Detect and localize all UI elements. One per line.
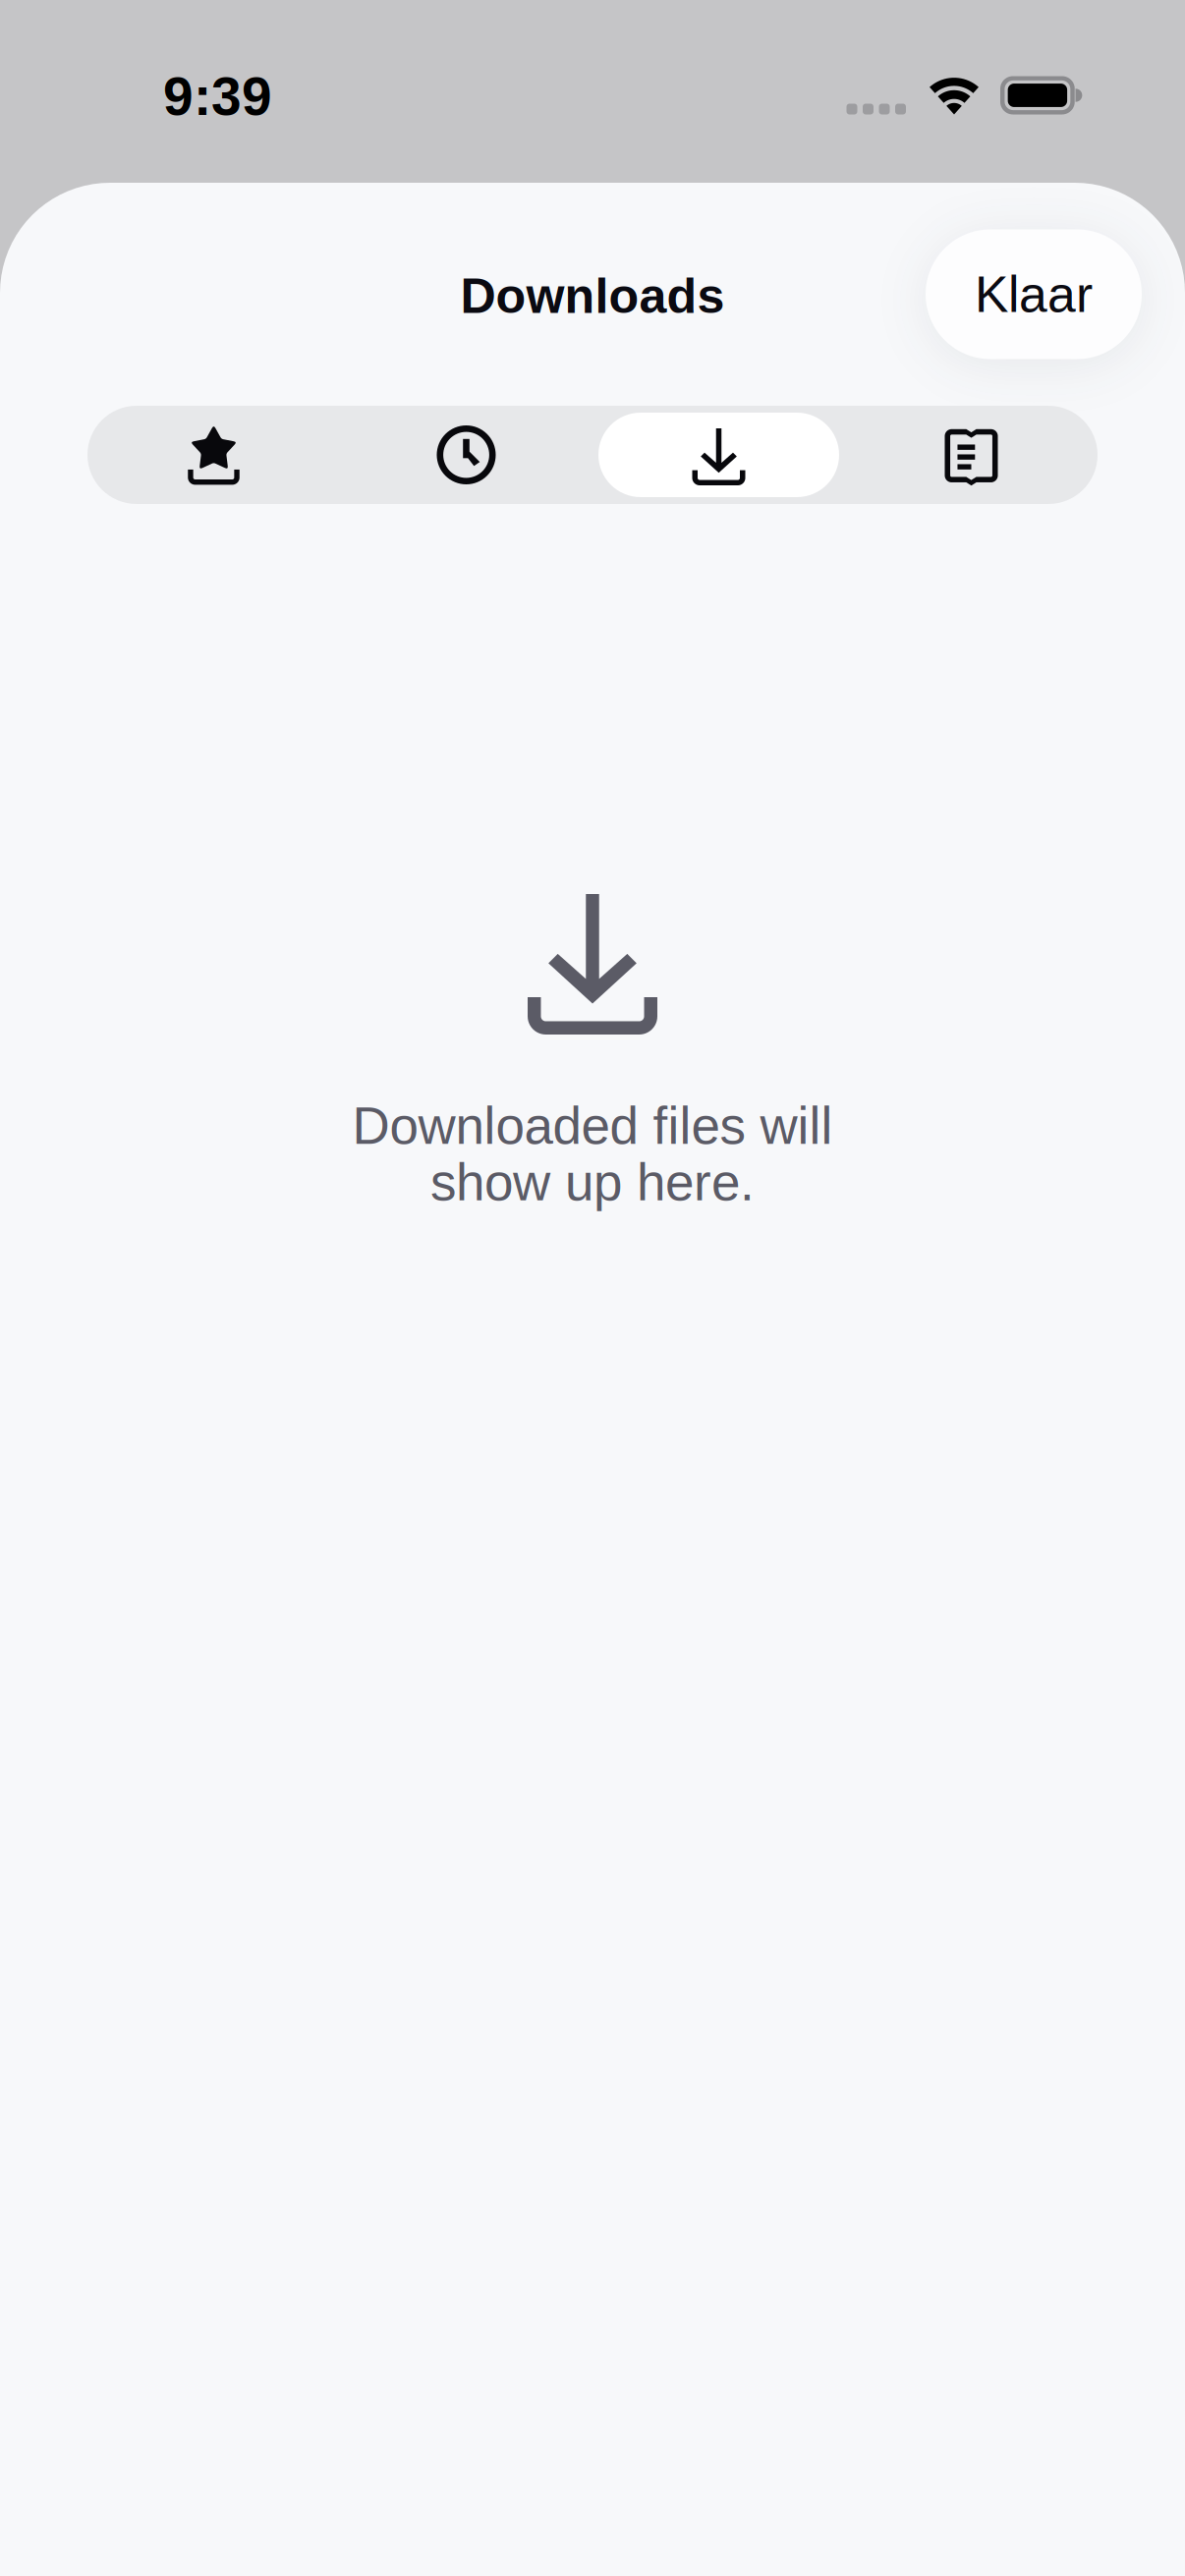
staticText: Downloaded files will — [352, 1097, 833, 1154]
button[interactable]: Klaar — [926, 229, 1142, 359]
staticText: Klaar — [975, 267, 1093, 322]
staticText: show up here. — [430, 1154, 755, 1211]
button[interactable]: Downloads — [592, 406, 845, 504]
button[interactable]: History — [340, 406, 592, 504]
button[interactable]: Reading list — [845, 406, 1098, 504]
staticText: Downloads — [460, 269, 725, 323]
staticText: 9:39 — [163, 67, 272, 126]
button[interactable]: Bookmarks — [87, 406, 340, 504]
